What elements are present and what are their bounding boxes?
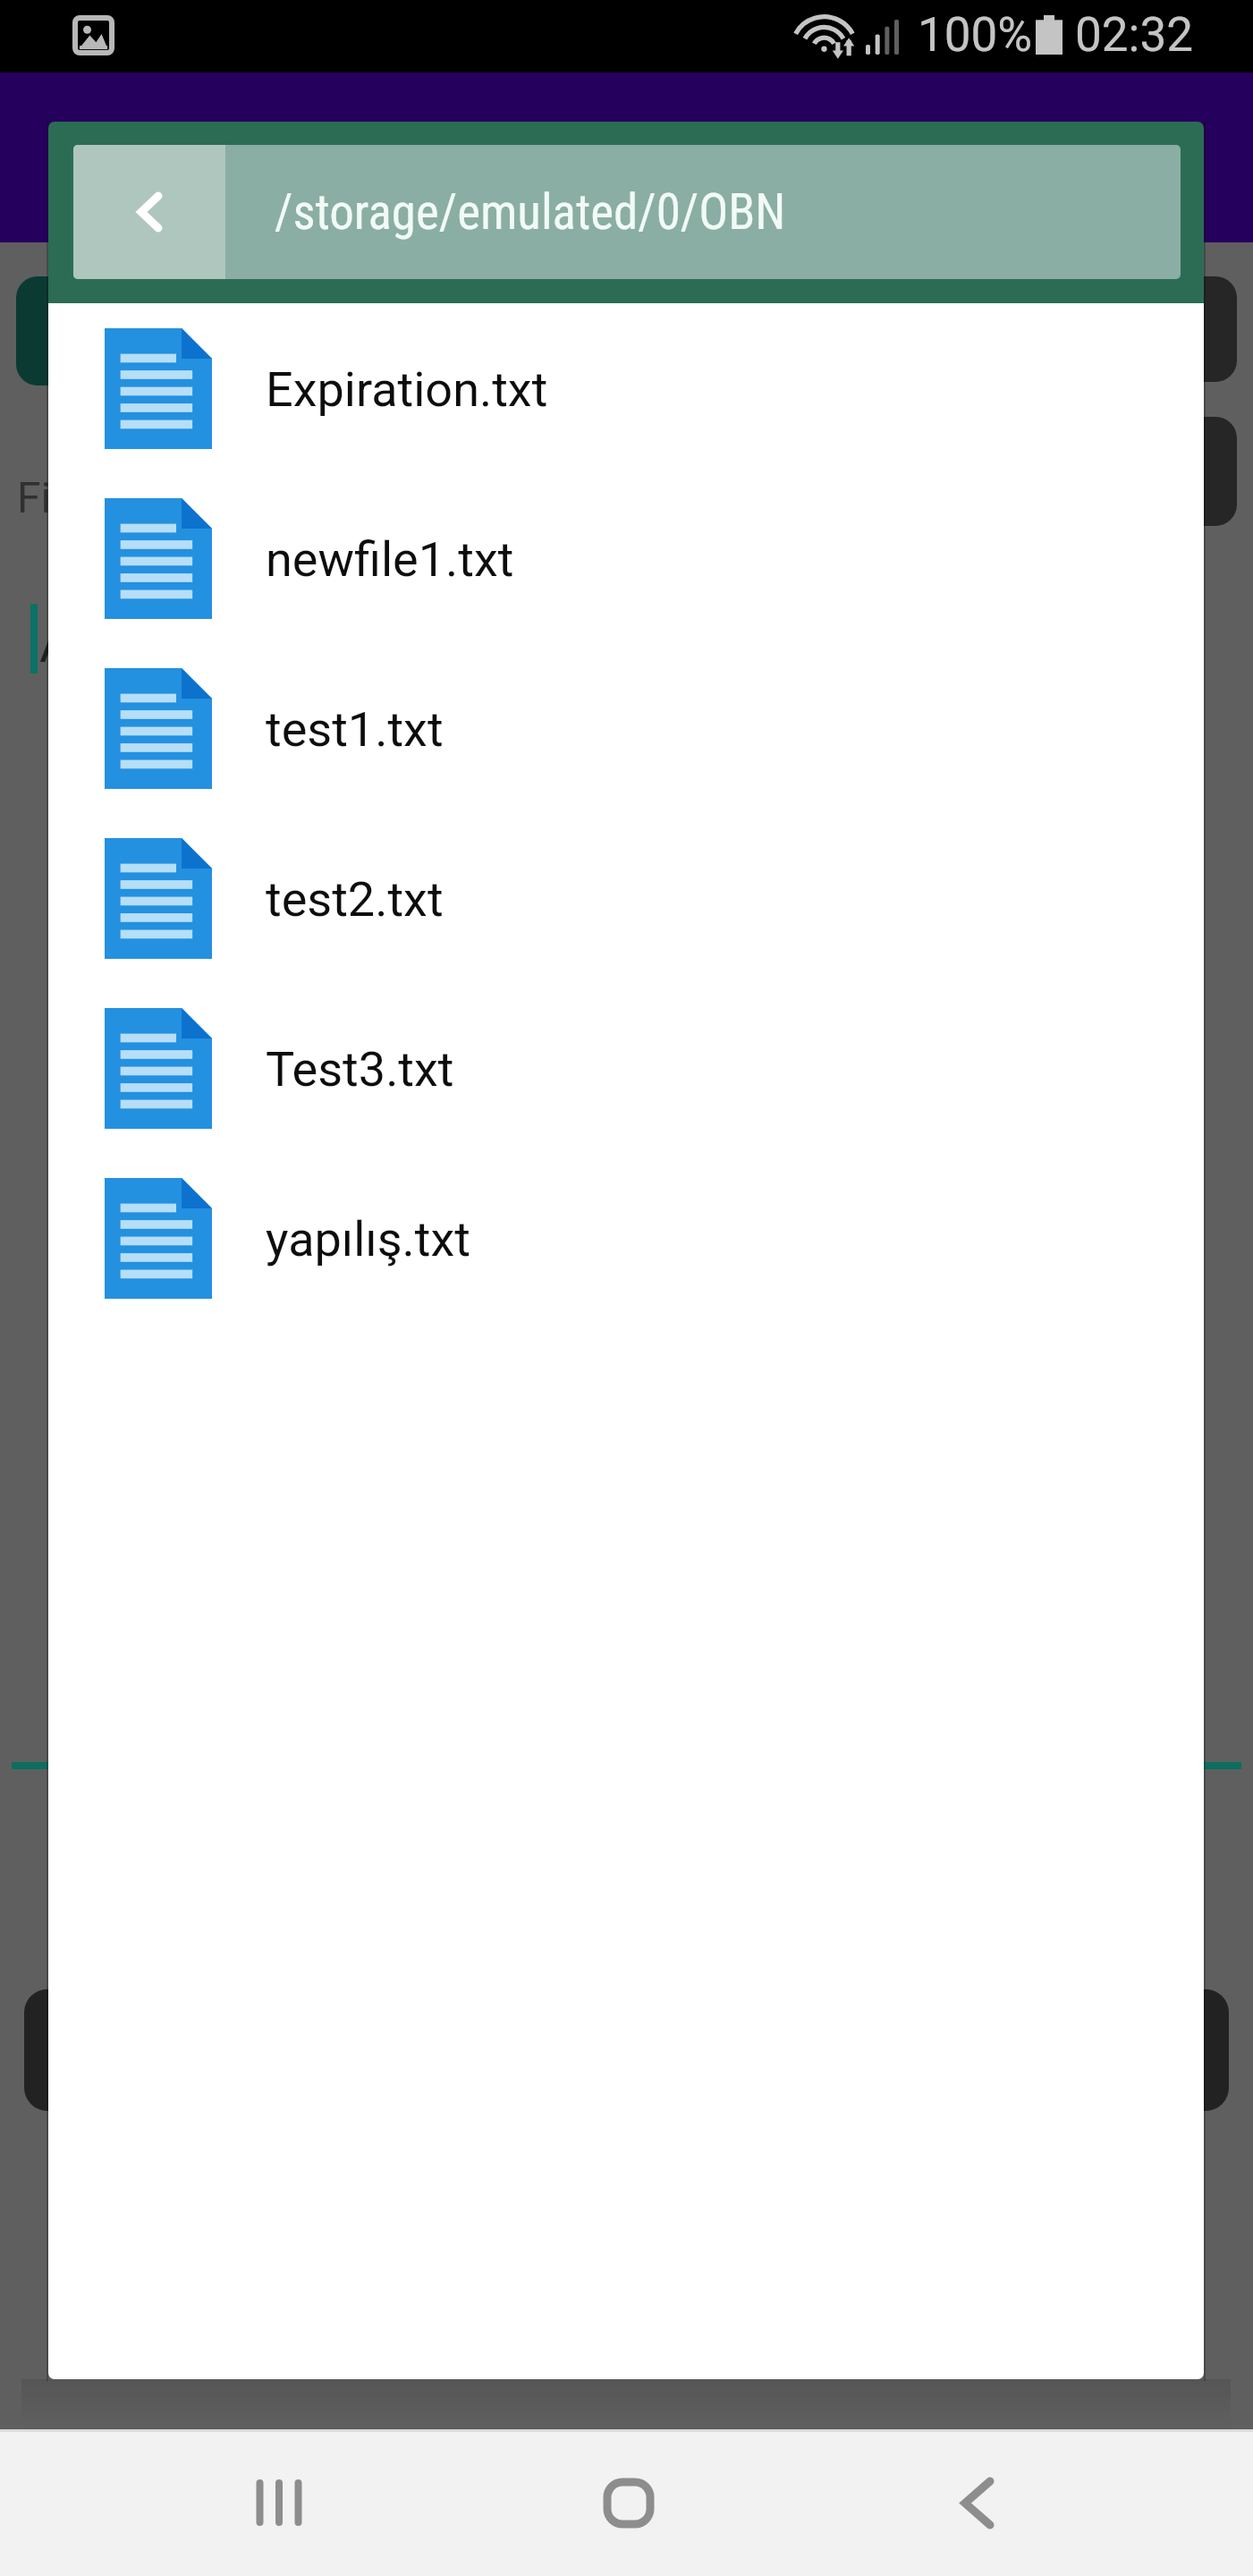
- staticText: Fi: [17, 472, 52, 522]
- staticText: test1.txt: [266, 701, 444, 758]
- button[interactable]: test1.txt: [48, 643, 1204, 813]
- staticText: /storage/emulated/0/OBN: [275, 183, 786, 241]
- staticText: A: [39, 614, 73, 674]
- button[interactable]: test2.txt: [48, 813, 1204, 983]
- staticText: test2.txt: [266, 871, 444, 928]
- button[interactable]: Test3.txt: [48, 983, 1204, 1153]
- staticText: 02:32: [1075, 7, 1193, 63]
- button[interactable]: Back: [908, 2458, 1046, 2547]
- button[interactable]: Recent apps: [209, 2458, 348, 2547]
- staticText: 100%: [918, 7, 1033, 63]
- button[interactable]: yapılış.txt: [48, 1153, 1204, 1323]
- staticText: Expiration.txt: [266, 361, 548, 418]
- button[interactable]: newfile1.txt: [48, 473, 1204, 643]
- staticText: newfile1.txt: [266, 531, 514, 588]
- button[interactable]: Back: [73, 145, 225, 279]
- button[interactable]: Expiration.txt: [48, 303, 1204, 473]
- staticText: yapılış.txt: [266, 1211, 470, 1267]
- staticText: Test3.txt: [266, 1041, 454, 1097]
- button[interactable]: Home: [559, 2458, 698, 2547]
